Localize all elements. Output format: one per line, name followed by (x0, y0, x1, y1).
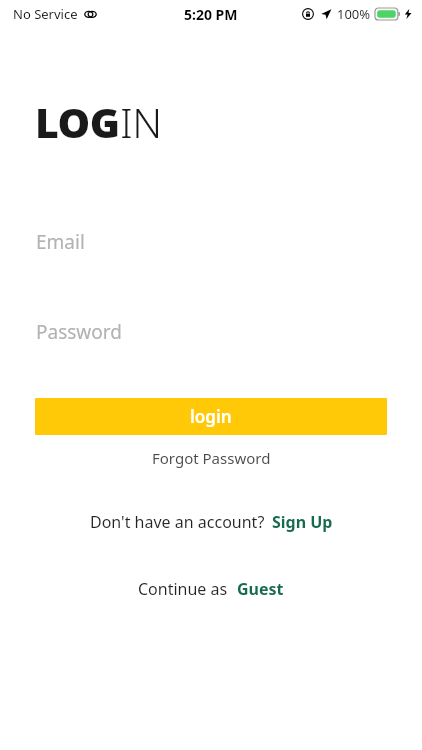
staticText: Don't have an account? (90, 511, 265, 533)
button[interactable]: login (35, 398, 387, 435)
staticText: IN (120, 94, 162, 150)
staticText: Forgot Password (152, 448, 271, 468)
button[interactable]: Forgot Password (142, 444, 281, 472)
staticText: 100% (337, 5, 371, 23)
button[interactable]: Password (0, 316, 422, 348)
staticText: Sign Up (272, 511, 333, 533)
staticText: Password (36, 319, 122, 345)
staticText: No Service (13, 5, 78, 23)
staticText: LOG (35, 94, 120, 150)
button[interactable]: Email (0, 226, 422, 258)
staticText: login (190, 405, 232, 428)
staticText: 5:20 PM (184, 5, 238, 24)
staticText: Email (36, 229, 85, 255)
button[interactable]: Continue as (130, 574, 292, 604)
staticText: Guest (237, 578, 284, 600)
button[interactable]: Don't have an account? (82, 507, 341, 537)
staticText: Continue as (138, 578, 228, 600)
